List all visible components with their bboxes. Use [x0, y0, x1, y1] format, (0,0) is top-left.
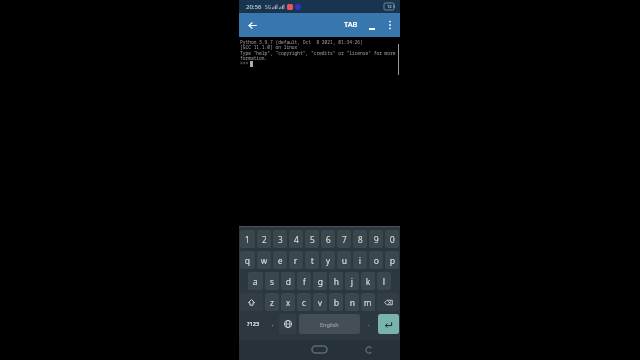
- button[interactable]: j: [345, 272, 359, 290]
- button[interactable]: 3: [273, 230, 287, 248]
- staticText: Python 3.9.7 (default, Oct 8 2021, 01:34…: [240, 39, 363, 45]
- button[interactable]: u: [337, 251, 351, 269]
- staticText: >>>: [240, 60, 251, 66]
- button[interactable]: c: [297, 293, 311, 311]
- staticText: 12: [387, 4, 392, 9]
- button[interactable]: g: [313, 272, 327, 290]
- staticText: m: [364, 297, 372, 308]
- button[interactable]: Enter: [378, 314, 399, 334]
- button[interactable]: q: [240, 251, 255, 269]
- staticText: a: [253, 276, 258, 287]
- staticText: 9: [374, 234, 379, 245]
- staticText: Type "help", "copyright", "credits" or "…: [240, 50, 401, 56]
- staticText: g: [318, 276, 323, 287]
- staticText: f: [303, 276, 306, 287]
- button[interactable]: 0: [385, 230, 399, 248]
- button[interactable]: d: [281, 272, 295, 290]
- staticText: ?123: [247, 320, 260, 328]
- staticText: r: [294, 255, 298, 266]
- staticText: 20:56: [246, 3, 262, 11]
- staticText: 0: [390, 234, 395, 245]
- staticText: o: [374, 255, 379, 266]
- staticText: [GCC 11.1.0] on linux: [240, 44, 298, 50]
- button[interactable]: Back: [239, 13, 265, 37]
- button[interactable]: i: [353, 251, 367, 269]
- staticText: w: [261, 255, 268, 266]
- button[interactable]: 8: [353, 230, 367, 248]
- button[interactable]: b: [329, 293, 343, 311]
- staticText: v: [318, 297, 322, 308]
- button[interactable]: 2: [257, 230, 271, 248]
- staticText: p: [390, 255, 395, 266]
- staticText: u: [342, 255, 347, 266]
- button[interactable]: y: [321, 251, 335, 269]
- button[interactable]: n: [345, 293, 359, 311]
- staticText: c: [302, 297, 306, 308]
- button[interactable]: 9: [369, 230, 383, 248]
- staticText: e: [278, 255, 283, 266]
- button[interactable]: r: [289, 251, 303, 269]
- button[interactable]: Home: [312, 346, 327, 353]
- button[interactable]: Change keyboard language: [279, 314, 296, 334]
- button[interactable]: Shift: [240, 293, 263, 311]
- staticText: 8: [358, 234, 363, 245]
- staticText: j: [351, 276, 353, 287]
- button[interactable]: h: [329, 272, 343, 290]
- staticText: n: [350, 297, 355, 308]
- staticText: l: [383, 276, 385, 287]
- staticText: t: [311, 255, 314, 266]
- staticText: b: [334, 297, 339, 308]
- staticText: 5G: [265, 4, 271, 10]
- button[interactable]: e: [273, 251, 287, 269]
- staticText: 6: [326, 234, 331, 245]
- button[interactable]: 5: [305, 230, 319, 248]
- button[interactable]: Minimize: [363, 13, 381, 37]
- button[interactable]: w: [257, 251, 271, 269]
- staticText: formation.: [240, 55, 268, 61]
- staticText: d: [286, 276, 291, 287]
- button[interactable]: TAB: [338, 13, 364, 37]
- button[interactable]: ?123: [240, 314, 267, 334]
- button[interactable]: s: [265, 272, 279, 290]
- button[interactable]: k: [361, 272, 375, 290]
- button[interactable]: t: [305, 251, 319, 269]
- button[interactable]: ,: [267, 314, 278, 334]
- staticText: 5: [310, 234, 315, 245]
- staticText: 4: [294, 234, 299, 245]
- staticText: .: [368, 320, 370, 328]
- staticText: q: [245, 255, 250, 266]
- staticText: English: [320, 321, 339, 328]
- staticText: ,: [272, 320, 274, 328]
- button[interactable]: a: [248, 272, 263, 290]
- staticText: 3: [278, 234, 283, 245]
- button[interactable]: 6: [321, 230, 335, 248]
- staticText: h: [334, 276, 339, 287]
- button[interactable]: z: [265, 293, 279, 311]
- button[interactable]: Backspace: [377, 293, 399, 311]
- button[interactable]: x: [281, 293, 295, 311]
- staticText: 7: [342, 234, 347, 245]
- button[interactable]: o: [369, 251, 383, 269]
- staticText: 1: [245, 234, 250, 245]
- staticText: TAB: [344, 19, 358, 29]
- button[interactable]: 1: [240, 230, 255, 248]
- staticText: x: [286, 297, 291, 308]
- staticText: k: [366, 276, 371, 287]
- button[interactable]: p: [385, 251, 399, 269]
- staticText: 2: [262, 234, 267, 245]
- staticText: z: [270, 297, 274, 308]
- button[interactable]: m: [361, 293, 375, 311]
- button[interactable]: More options: [381, 13, 399, 37]
- button[interactable]: 7: [337, 230, 351, 248]
- button[interactable]: v: [313, 293, 327, 311]
- button[interactable]: English: [299, 314, 360, 334]
- staticText: y: [326, 255, 330, 266]
- staticText: s: [270, 276, 274, 287]
- button[interactable]: l: [377, 272, 391, 290]
- button[interactable]: f: [297, 272, 311, 290]
- button[interactable]: Back: [363, 344, 374, 355]
- staticText: i: [359, 255, 361, 266]
- button[interactable]: 4: [289, 230, 303, 248]
